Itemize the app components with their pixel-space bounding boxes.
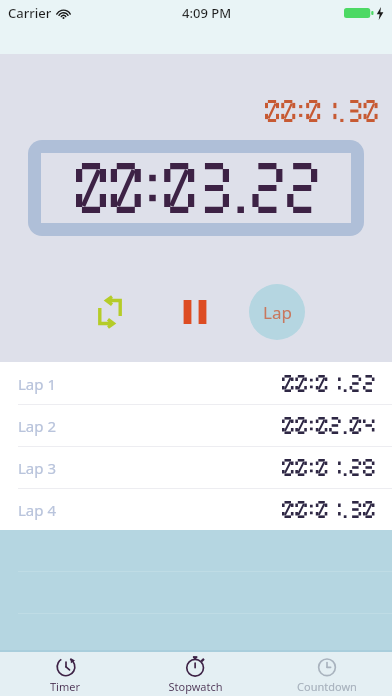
staticText: Lap 4 — [18, 500, 56, 520]
button[interactable]: Lap — [249, 284, 305, 340]
staticText: Timer — [50, 679, 80, 694]
staticText: Lap 1 — [18, 374, 56, 394]
button[interactable]: Stopwatch — [130, 652, 261, 696]
button[interactable]: Lap 3 — [0, 446, 392, 488]
staticText: Lap — [263, 301, 292, 324]
staticText: Lap 2 — [18, 416, 56, 436]
button[interactable]: Lap 2 — [0, 404, 392, 446]
button[interactable]: Countdown — [261, 652, 392, 696]
button[interactable]: Reset — [84, 286, 136, 338]
button[interactable]: Pause — [169, 286, 221, 338]
button[interactable]: Lap 1 — [0, 362, 392, 404]
staticText: Carrier — [8, 4, 52, 22]
button[interactable]: Lap 4 — [0, 488, 392, 530]
staticText: Stopwatch — [168, 679, 223, 694]
staticText: 4:09 PM — [182, 4, 232, 22]
staticText: Countdown — [297, 679, 357, 694]
staticText: Lap 3 — [18, 458, 56, 478]
button[interactable]: Timer — [0, 652, 130, 696]
